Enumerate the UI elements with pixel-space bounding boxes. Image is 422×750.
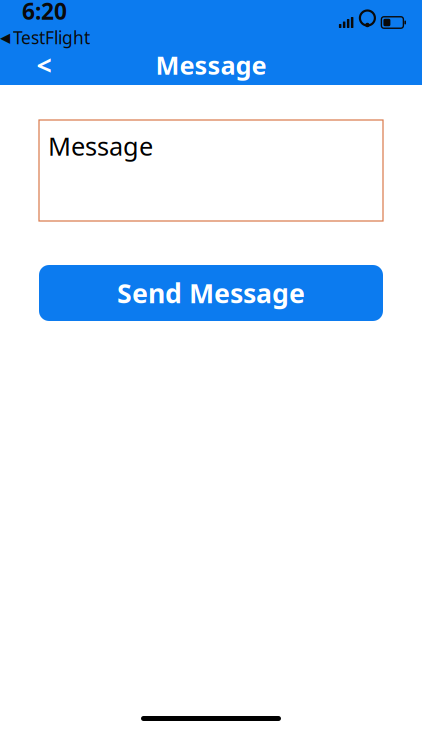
- button[interactable]: Message: [39, 120, 383, 221]
- staticText: Message: [155, 48, 266, 82]
- button[interactable]: Back: [22, 45, 66, 85]
- staticText: 6:20: [22, 0, 67, 26]
- button[interactable]: Send Message: [39, 265, 383, 321]
- staticText: <: [36, 47, 51, 83]
- staticText: Send Message: [117, 275, 305, 311]
- staticText: Message: [48, 129, 153, 163]
- staticText: ◀: [0, 30, 10, 45]
- staticText: TestFlight: [13, 26, 90, 49]
